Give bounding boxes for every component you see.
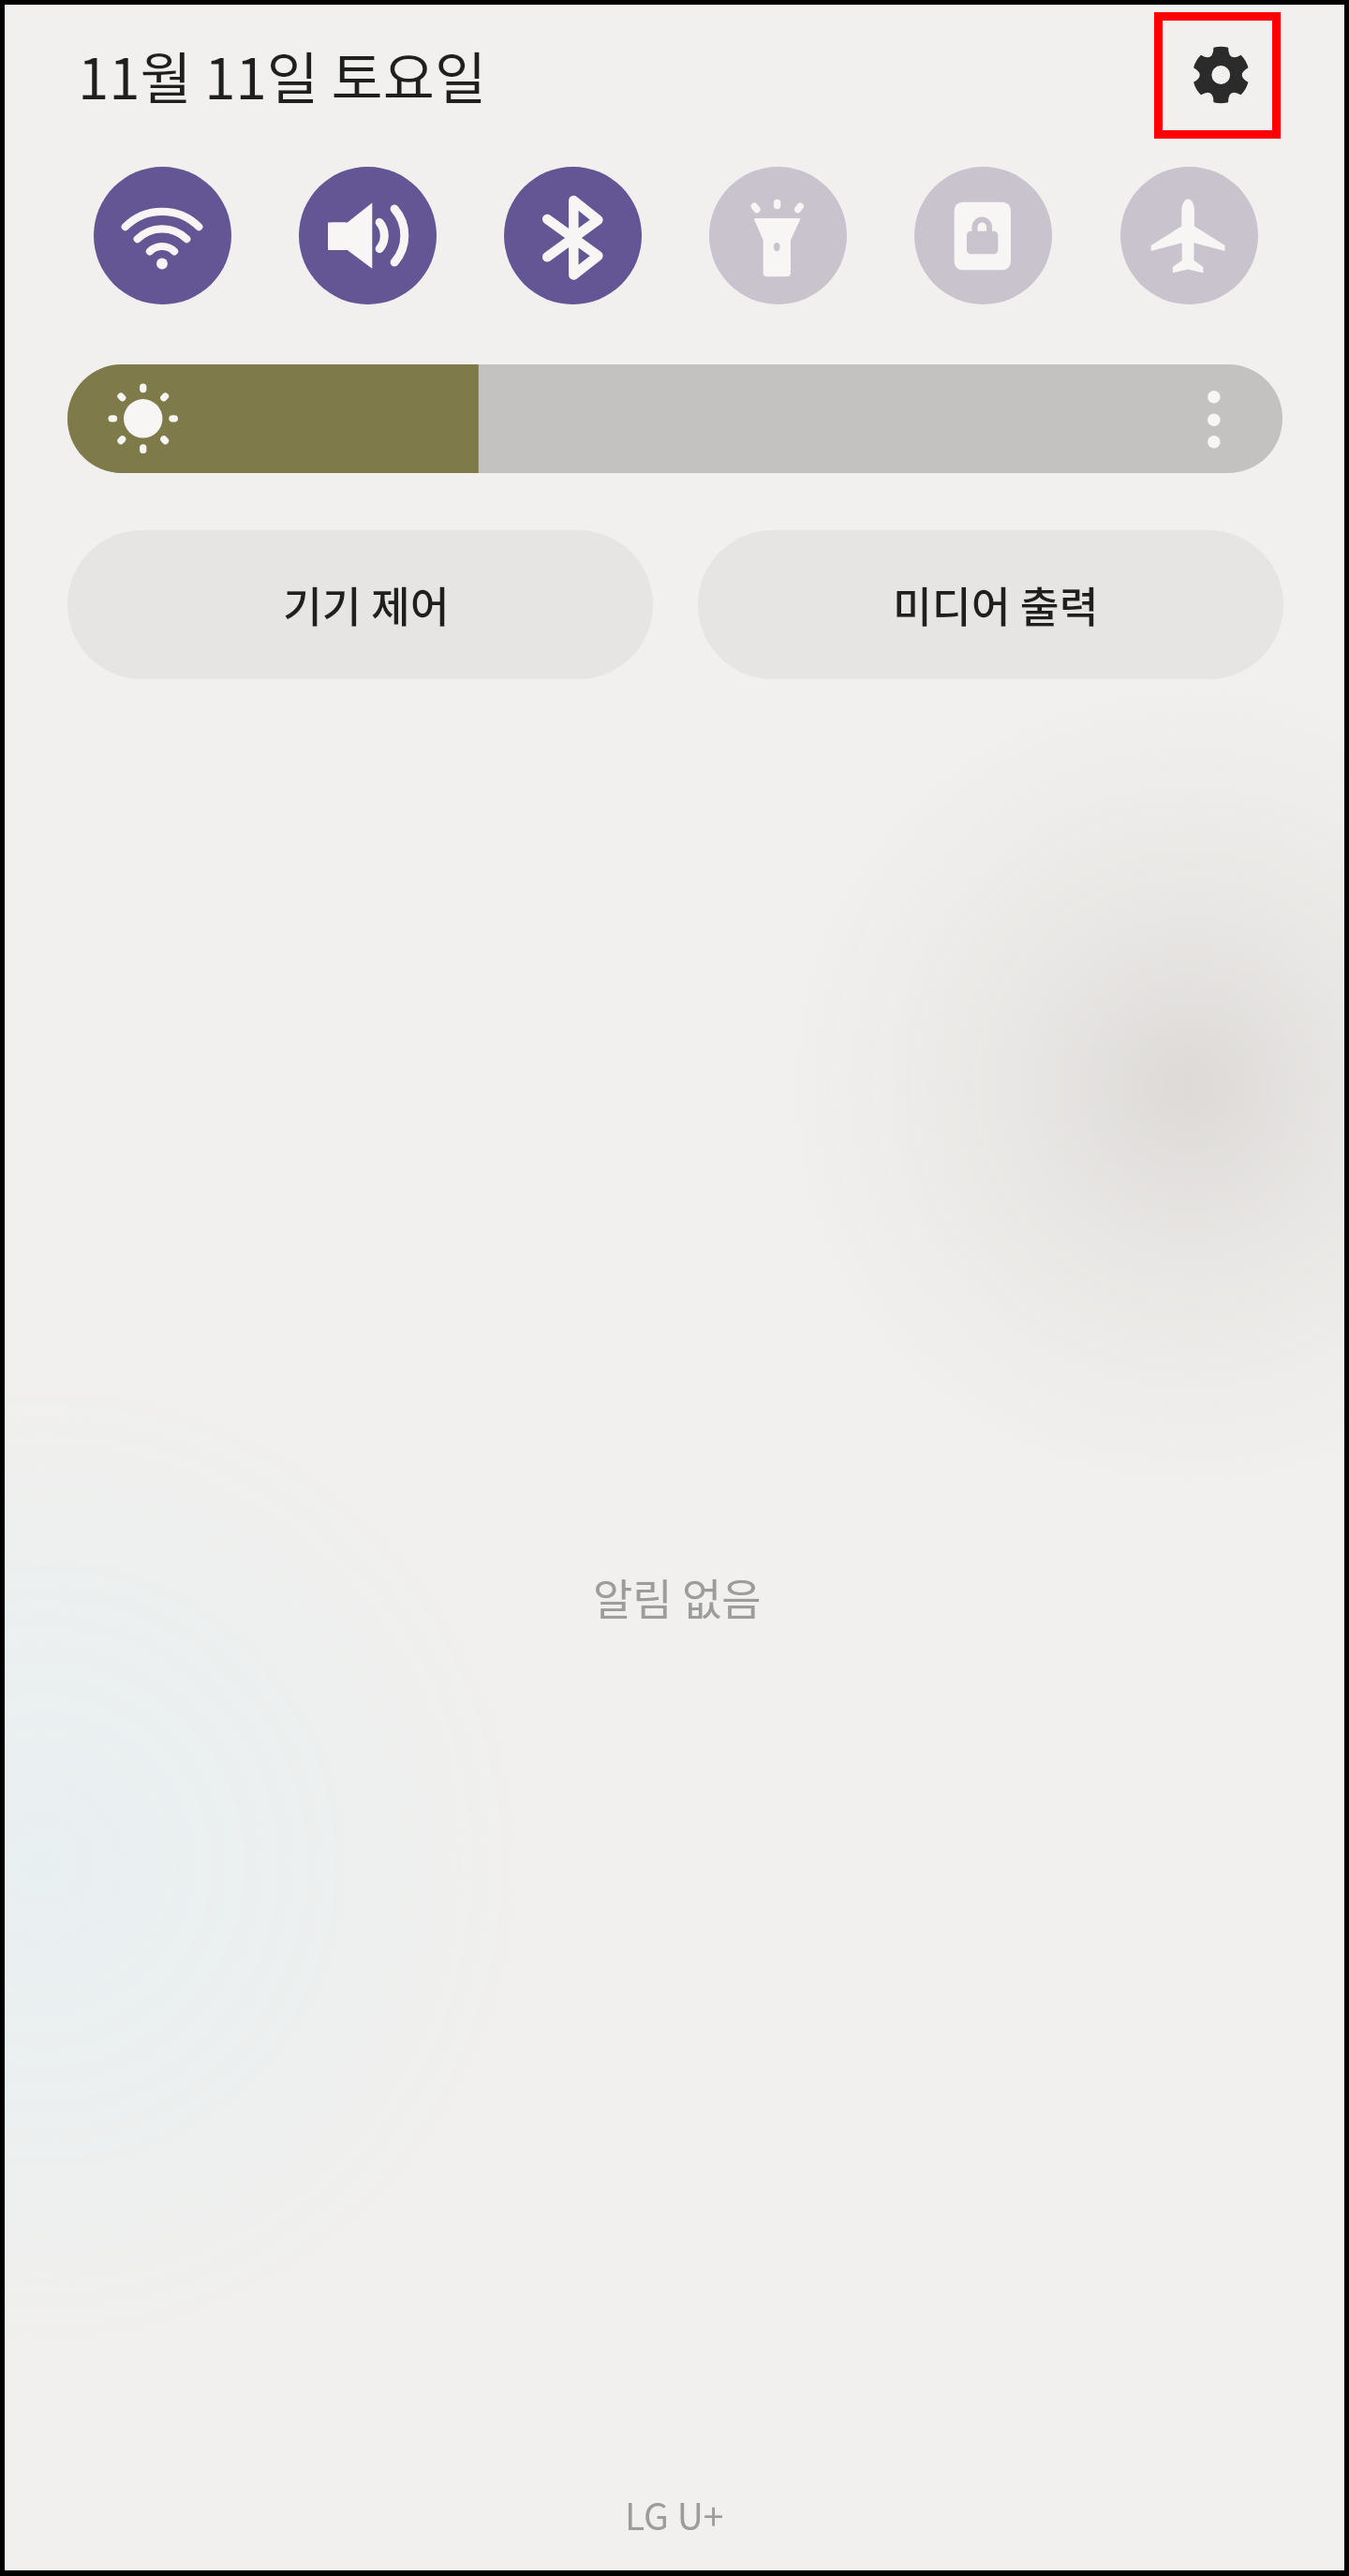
button[interactable]: Settings xyxy=(1154,12,1281,139)
button[interactable]: Airplane mode xyxy=(1120,167,1258,304)
button[interactable]: 기기 제어 xyxy=(67,530,653,679)
button[interactable]: Wi-Fi xyxy=(94,167,231,304)
button[interactable]: Bluetooth xyxy=(504,167,642,304)
staticText: 11월 11일 토요일 xyxy=(78,34,487,115)
staticText: 알림 없음 xyxy=(593,1565,762,1628)
button[interactable]: 미디어 출력 xyxy=(698,530,1283,679)
staticText: 기기 제어 xyxy=(283,573,450,635)
button[interactable]: Flashlight xyxy=(709,167,847,304)
button[interactable]: Brightness xyxy=(67,364,1282,473)
staticText: LG U+ xyxy=(625,2488,724,2540)
staticText: 미디어 출력 xyxy=(893,573,1099,635)
button[interactable]: Screen lock xyxy=(914,167,1052,304)
button[interactable]: Sound xyxy=(299,167,437,304)
